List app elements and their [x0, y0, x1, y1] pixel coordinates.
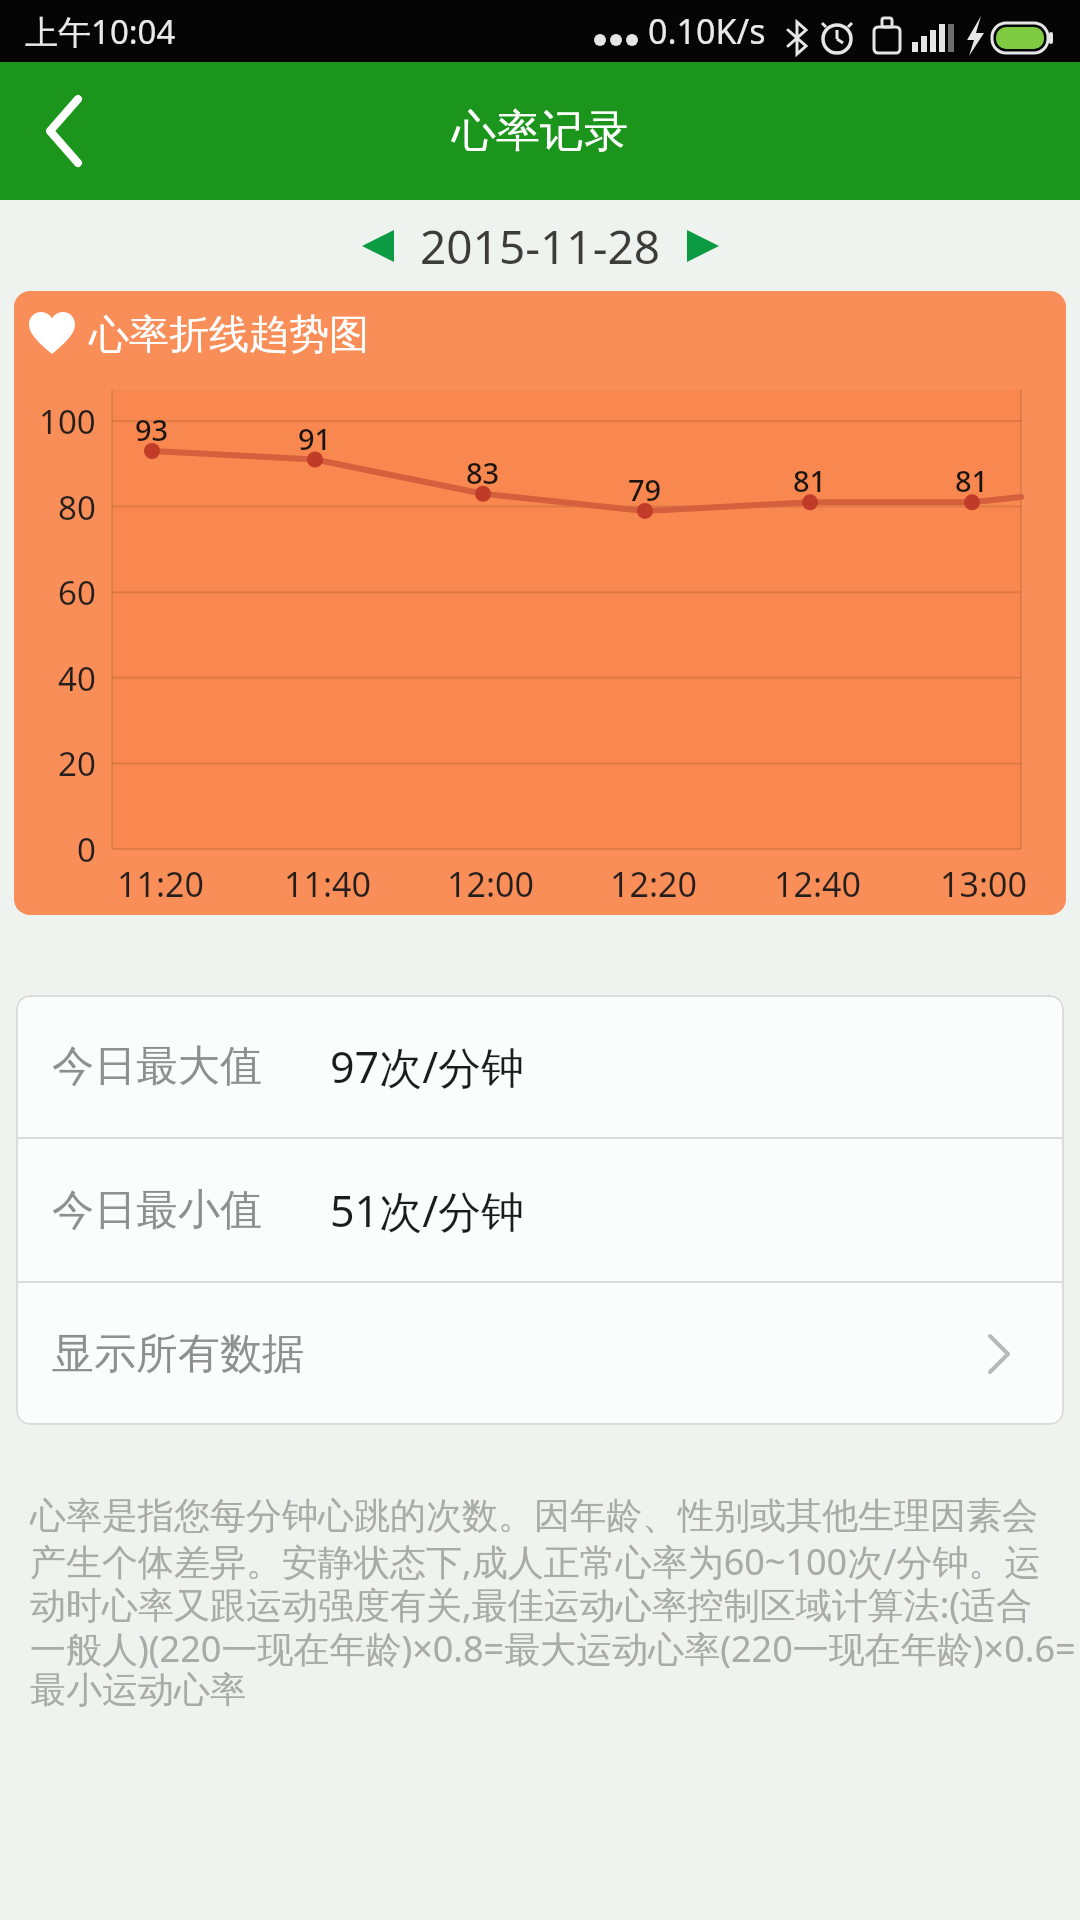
button[interactable]: 显示所有数据 [16, 1283, 1064, 1425]
staticText: 上午10:04 [25, 9, 176, 54]
button[interactable]: 今日最大值 [16, 995, 1064, 1137]
staticText: 一般人)(220一现在年龄)×0.8=最大运动心率(220一现在年龄)×0.6= [30, 1624, 1076, 1668]
button[interactable] [348, 216, 408, 276]
staticText: 心率是指您每分钟心跳的次数。因年龄、性别或其他生理因素会 [30, 1493, 1038, 1537]
staticText: 显示所有数据 [52, 1328, 304, 1381]
staticText: 今日最大值 [52, 1040, 262, 1093]
staticText: 0 [77, 827, 96, 872]
staticText: 80 [58, 485, 96, 530]
staticText: 79 [628, 470, 662, 502]
staticText: 13:00 [940, 861, 1027, 907]
staticText: 20 [58, 741, 96, 786]
staticText: 0.10K/s [648, 8, 766, 54]
staticText: 100 [39, 399, 96, 444]
staticText: 51次/分钟 [330, 1181, 525, 1240]
button[interactable] [0, 62, 130, 200]
staticText: 动时心率又跟运动强度有关,最佳运动心率控制区域计算法:(适合 [30, 1580, 1033, 1624]
staticText: 91 [298, 419, 332, 451]
staticText: 12:40 [774, 861, 861, 907]
staticText: 81 [955, 461, 989, 493]
staticText: 97次/分钟 [330, 1037, 525, 1096]
staticText: 40 [58, 656, 96, 701]
staticText: 产生个体差异。安静状态下,成人正常心率为60~100次/分钟。运 [30, 1537, 1041, 1581]
staticText: 11:20 [117, 861, 204, 907]
staticText: 83 [466, 453, 500, 485]
staticText: 11:40 [284, 861, 371, 907]
button[interactable] [673, 216, 733, 276]
staticText: 12:20 [610, 861, 697, 907]
staticText: 今日最小值 [52, 1184, 262, 1237]
staticText: 60 [58, 570, 96, 615]
button[interactable]: 今日最小值 [16, 1139, 1064, 1281]
staticText: 93 [135, 410, 169, 442]
staticText: 2015-11-28 [420, 215, 661, 278]
staticText: 心率记录 [452, 104, 628, 159]
staticText: 81 [793, 461, 827, 493]
staticText: 心率折线趋势图 [89, 309, 369, 359]
staticText: 12:00 [447, 861, 534, 907]
staticText: 最小运动心率 [30, 1667, 246, 1711]
